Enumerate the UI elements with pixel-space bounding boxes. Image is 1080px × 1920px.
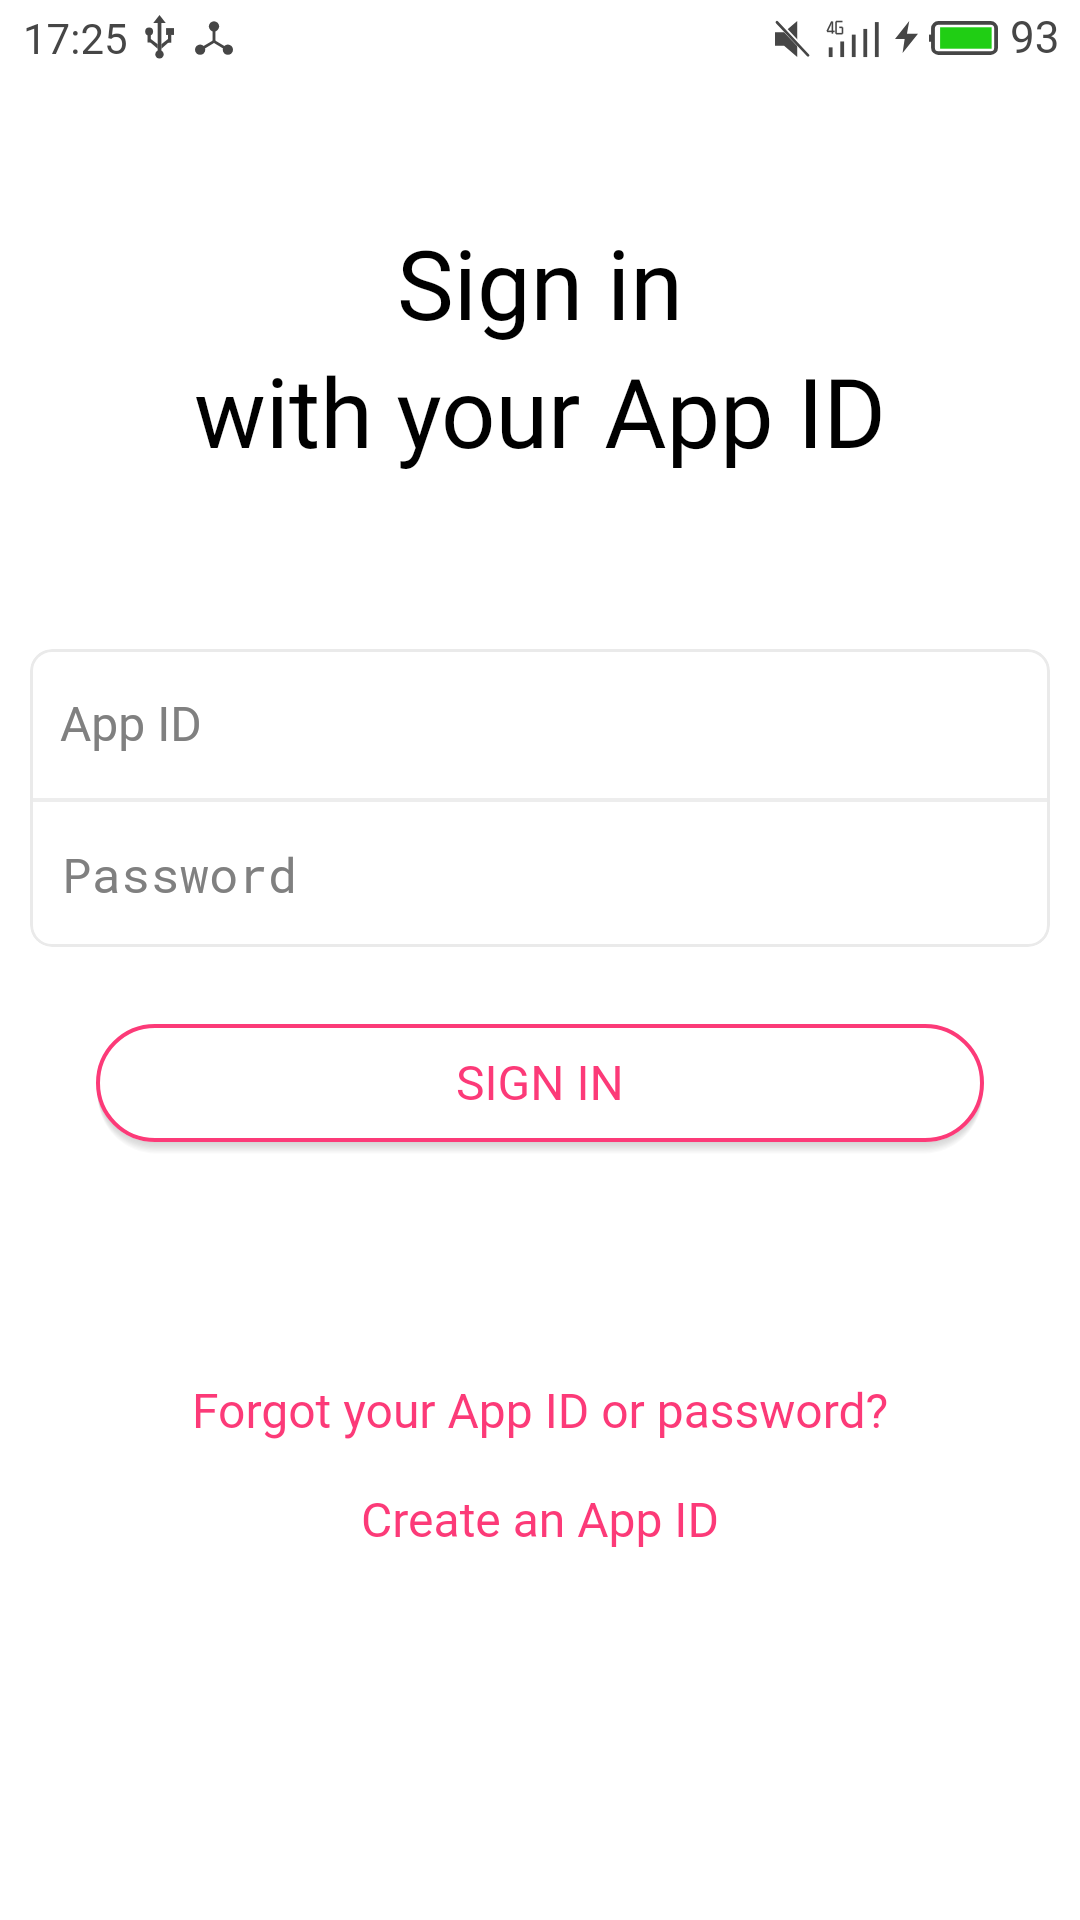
other: Mobile signal 4G <box>824 20 880 58</box>
button[interactable]: Forgot your App ID or password? <box>172 1370 909 1452</box>
other: Sound off <box>775 21 810 57</box>
staticText: Forgot your App ID or password? <box>192 1383 889 1439</box>
staticText: Password <box>62 842 298 907</box>
staticText: Create an App ID <box>361 1492 719 1548</box>
button[interactable]: App ID <box>30 649 1050 798</box>
staticText: Sign in with your App ID <box>0 231 1080 471</box>
other: Connected device <box>195 21 233 55</box>
button[interactable]: Password <box>30 802 1050 947</box>
button[interactable]: Create an App ID <box>341 1479 739 1561</box>
other: Battery 93 percent <box>929 21 998 55</box>
button[interactable]: SIGN IN <box>96 1024 984 1142</box>
staticText: App ID <box>60 696 202 752</box>
staticText: SIGN IN <box>456 1055 624 1111</box>
staticText: 93 <box>1010 12 1060 64</box>
staticText: 17:25 <box>23 15 128 64</box>
other: Charging <box>895 21 918 53</box>
other: USB connected <box>145 15 174 59</box>
